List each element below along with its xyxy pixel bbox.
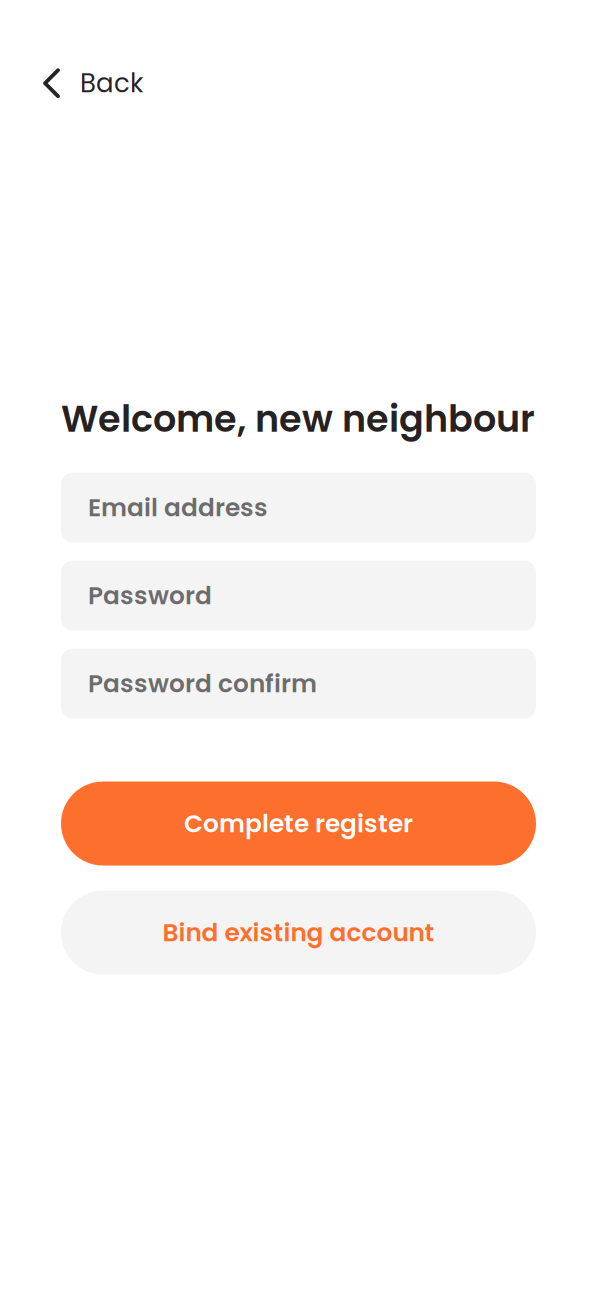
staticText: Password confirm: [88, 666, 317, 701]
staticText: Password: [88, 578, 212, 613]
button[interactable]: Bind existing account: [61, 890, 536, 974]
staticText: Bind existing account: [162, 915, 434, 950]
button[interactable]: Password: [61, 560, 536, 630]
button[interactable]: Email address: [61, 472, 536, 542]
button[interactable]: Password confirm: [61, 648, 536, 718]
staticText: Welcome, new neighbour: [61, 393, 535, 444]
staticText: Email address: [88, 490, 268, 525]
button[interactable]: Complete register: [61, 781, 536, 865]
button[interactable]: Back: [33, 53, 153, 113]
staticText: Complete register: [184, 806, 413, 841]
staticText: Back: [80, 65, 143, 101]
